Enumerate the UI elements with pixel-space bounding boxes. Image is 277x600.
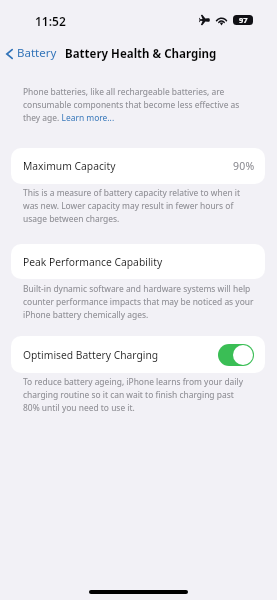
staticText: Optimised Battery Charging	[23, 348, 159, 362]
staticText: Battery Health & Charging	[65, 46, 217, 62]
staticText: 11:52	[35, 13, 66, 29]
staticText: Battery	[17, 45, 57, 61]
button[interactable]: Optimised Battery Charging	[11, 336, 265, 373]
button[interactable]: Maximum Capacity	[11, 148, 265, 184]
staticText: Peak Performance Capability	[23, 255, 163, 269]
staticText: Maximum Capacity	[23, 159, 116, 173]
other: Wi-Fi	[216, 16, 227, 25]
staticText: 90%	[233, 159, 255, 173]
staticText: To reduce battery ageing, iPhone learns …	[23, 375, 255, 414]
button[interactable]: Optimised Battery Charging toggle	[218, 344, 254, 366]
other: Back to Battery	[6, 49, 13, 59]
staticText: 97	[239, 15, 248, 25]
button[interactable]: Back to Battery	[0, 43, 61, 63]
staticText: This is a measure of battery capacity re…	[23, 186, 255, 225]
staticText: Phone batteries, like all rechargeable b…	[23, 85, 255, 124]
staticText: Built-in dynamic software and hardware s…	[23, 282, 255, 321]
other: Aeroplane mode	[199, 14, 210, 25]
button[interactable]: Peak Performance Capability	[11, 244, 265, 279]
